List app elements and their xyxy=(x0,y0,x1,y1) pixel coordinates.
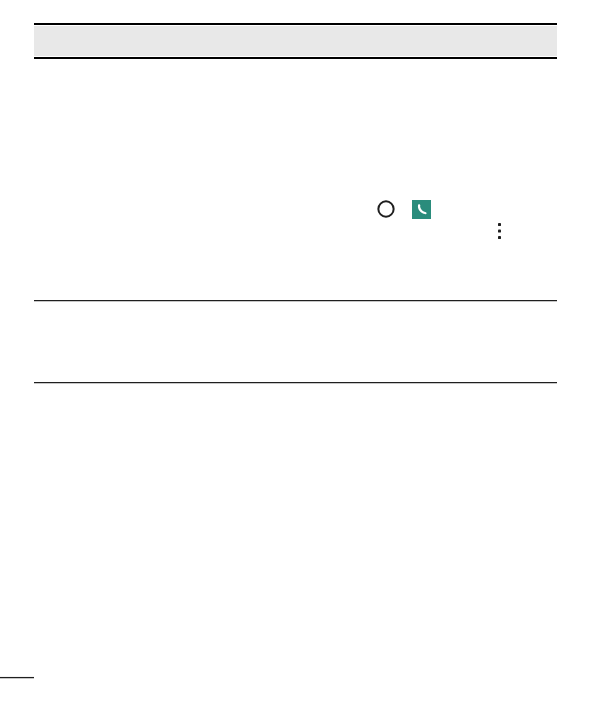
button[interactable]: Record xyxy=(375,198,397,220)
button[interactable]: More options xyxy=(489,216,510,246)
button[interactable]: Header xyxy=(34,23,557,59)
button[interactable]: Call xyxy=(412,200,431,219)
